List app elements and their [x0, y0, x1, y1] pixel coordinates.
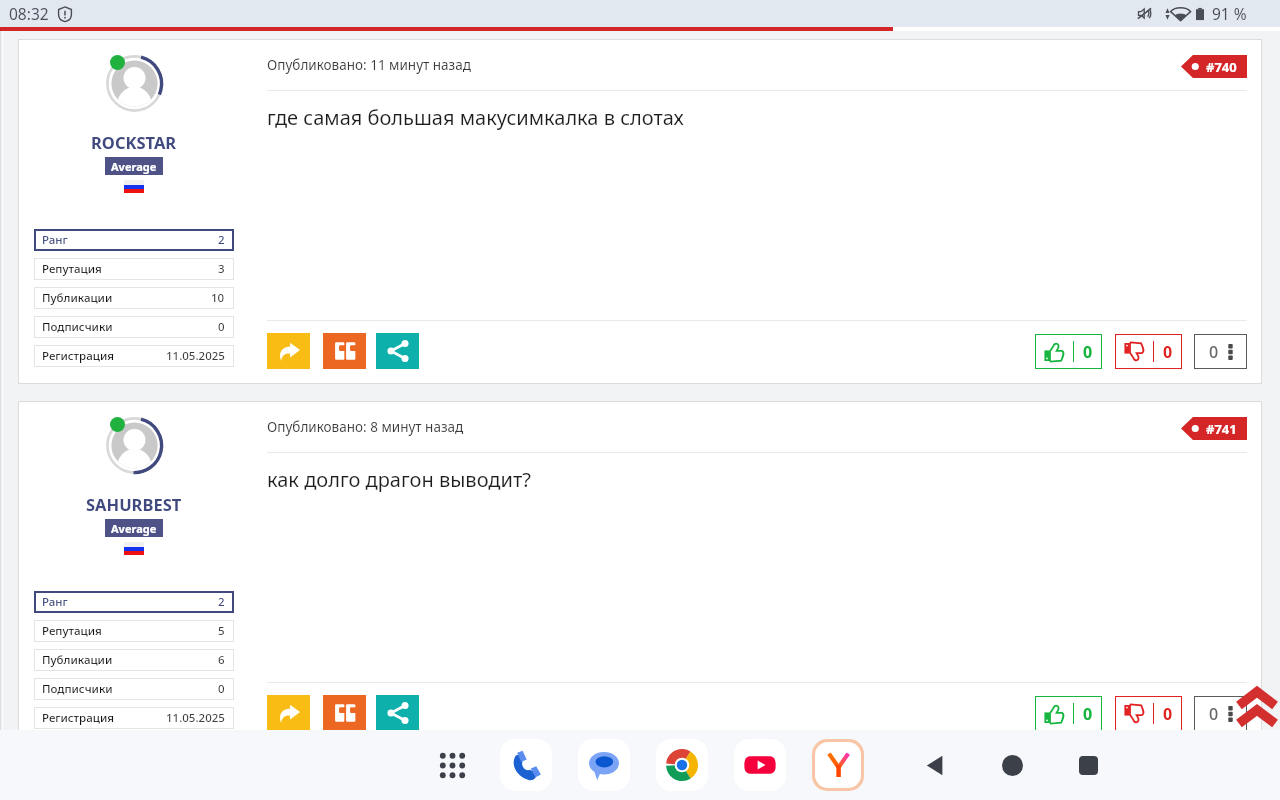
button[interactable]: Quote	[323, 333, 366, 369]
staticText: Публикации	[42, 652, 113, 668]
staticText: 3	[218, 261, 225, 277]
staticText: Подписчики	[42, 681, 113, 697]
button[interactable]: Like	[1035, 696, 1102, 730]
staticText: Публикации	[42, 290, 113, 306]
button[interactable]: Recents	[1065, 742, 1111, 788]
button[interactable]: Avatar	[106, 417, 163, 474]
staticText: Average	[111, 159, 157, 174]
staticText: 0	[1209, 703, 1219, 725]
button[interactable]: Chrome	[656, 739, 708, 791]
staticText: 2	[218, 594, 225, 610]
button[interactable]: Ранг	[34, 229, 234, 251]
button[interactable]: Share	[376, 695, 419, 730]
staticText: Подписчики	[42, 319, 113, 335]
button[interactable]: Reply	[267, 333, 310, 369]
button[interactable]: Подписчики	[34, 678, 234, 700]
button[interactable]: Average	[111, 157, 157, 175]
button[interactable]: More options	[1194, 334, 1247, 369]
button[interactable]: Share	[376, 333, 419, 369]
button[interactable]: #740	[1181, 55, 1247, 78]
staticText: 91 %	[1212, 3, 1247, 24]
staticText: 0	[1083, 341, 1093, 363]
button[interactable]: Back	[913, 742, 959, 788]
staticText: Ранг	[42, 232, 68, 248]
staticText: Опубликовано: 11 минут назад	[267, 56, 471, 74]
button[interactable]: Scroll to top	[1235, 685, 1279, 729]
staticText: где самая большая макусимкалка в слотах	[267, 104, 684, 131]
staticText: 08:32	[9, 3, 49, 24]
staticText: Регистрация	[42, 710, 114, 726]
staticText: 0	[1163, 703, 1173, 725]
button[interactable]: Messages	[578, 739, 630, 791]
button[interactable]: Quote	[323, 695, 366, 730]
staticText: ROCKSTAR	[91, 131, 177, 153]
staticText: 10	[211, 290, 225, 306]
button[interactable]: Home	[989, 742, 1035, 788]
button[interactable]: Phone	[500, 739, 552, 791]
staticText: SAHURBEST	[86, 493, 182, 515]
staticText: Ранг	[42, 594, 68, 610]
button[interactable]: Dislike	[1115, 696, 1182, 730]
button[interactable]: #741	[1181, 417, 1247, 440]
staticText: 0	[1209, 341, 1219, 363]
staticText: 11.05.2025	[166, 348, 225, 364]
staticText: Average	[111, 521, 157, 536]
button[interactable]: Регистрация	[34, 707, 234, 729]
button[interactable]: Yandex	[815, 742, 861, 788]
button[interactable]: Публикации	[34, 649, 234, 671]
staticText: Репутация	[42, 261, 102, 277]
button[interactable]: Регистрация	[34, 345, 234, 367]
staticText: Регистрация	[42, 348, 114, 364]
button[interactable]: More options	[1194, 696, 1247, 730]
staticText: 0	[1083, 703, 1093, 725]
button[interactable]: Dislike	[1115, 334, 1182, 369]
button[interactable]: Average	[111, 519, 157, 537]
staticText: 11.05.2025	[166, 710, 225, 726]
button[interactable]: Reply	[267, 695, 310, 730]
staticText: 0	[1163, 341, 1173, 363]
staticText: Репутация	[42, 623, 102, 639]
button[interactable]: Публикации	[34, 287, 234, 309]
button[interactable]: YouTube	[734, 739, 786, 791]
staticText: 5	[218, 623, 225, 639]
button[interactable]: Репутация	[34, 258, 234, 280]
staticText: #740	[1206, 58, 1237, 76]
button[interactable]: Ранг	[34, 591, 234, 613]
button[interactable]: All apps	[429, 742, 475, 788]
staticText: #741	[1206, 420, 1237, 438]
button[interactable]: Подписчики	[34, 316, 234, 338]
staticText: Опубликовано: 8 минут назад	[267, 418, 464, 436]
staticText: 0	[218, 681, 225, 697]
staticText: 2	[218, 232, 225, 248]
button[interactable]: Репутация	[34, 620, 234, 642]
staticText: как долго драгон выводит?	[267, 466, 531, 493]
staticText: 0	[218, 319, 225, 335]
staticText: 6	[218, 652, 225, 668]
button[interactable]: Like	[1035, 334, 1102, 369]
button[interactable]: Avatar	[106, 55, 163, 112]
